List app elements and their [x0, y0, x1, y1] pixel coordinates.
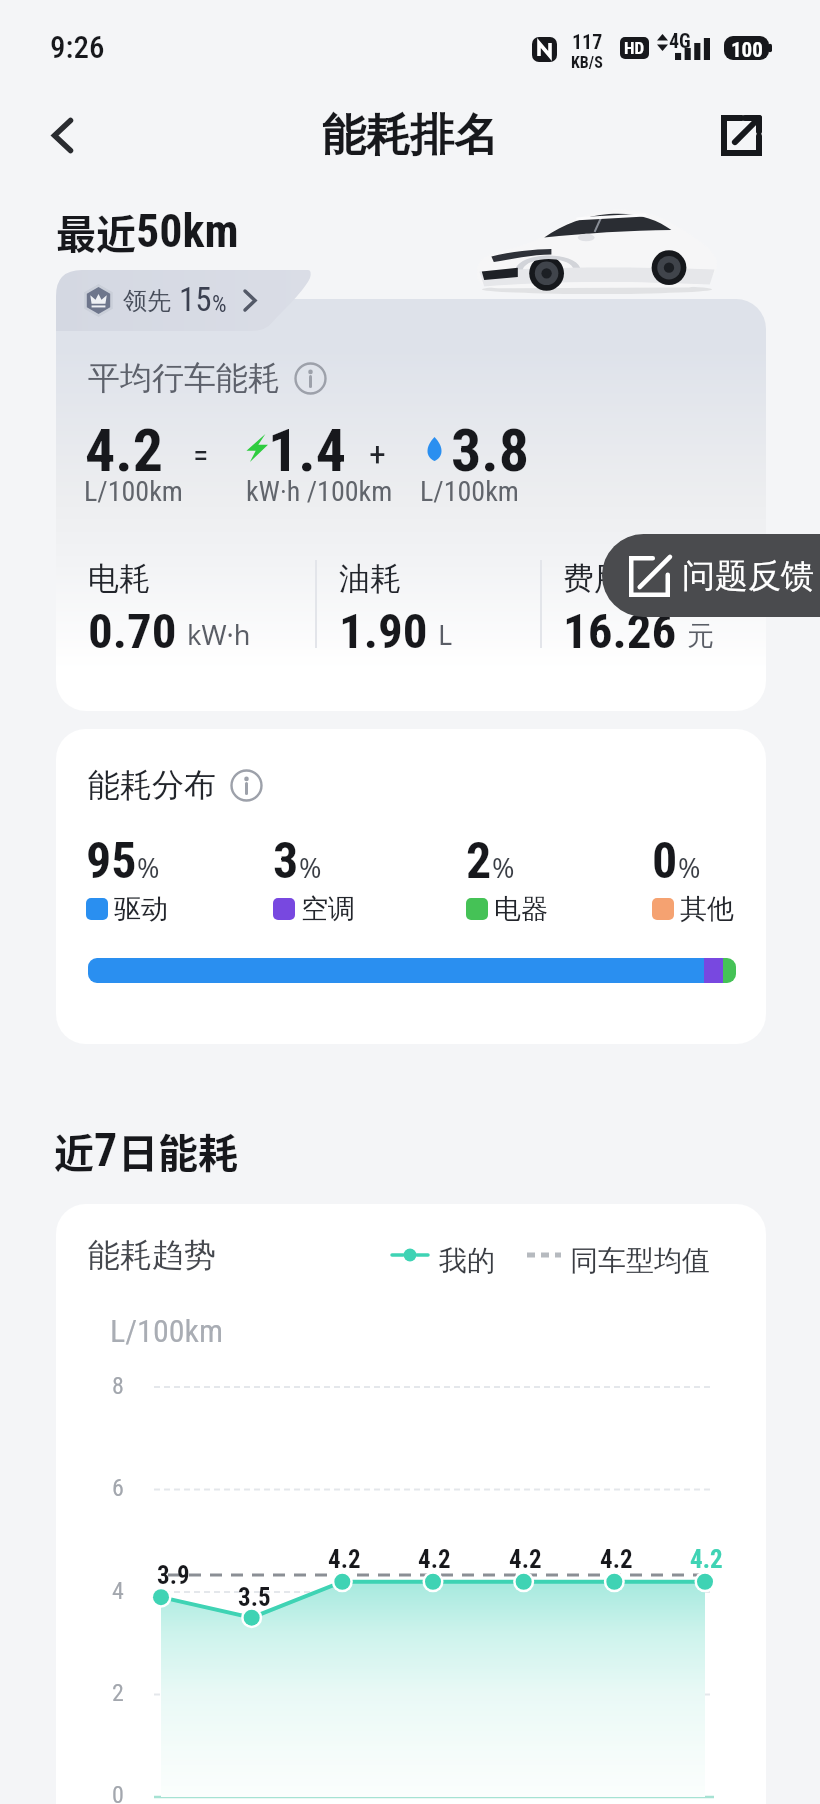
staticText: 7 [94, 1123, 118, 1177]
staticText: 驱动 [114, 892, 168, 926]
staticText: + [369, 434, 386, 474]
staticText: 能耗排名 [322, 108, 498, 163]
staticText: 其他 [680, 892, 734, 926]
staticText: 4.2 [85, 415, 164, 485]
staticText: 2 [466, 832, 492, 891]
staticText: 1.90 [339, 603, 428, 660]
staticText: 95 [86, 832, 137, 891]
staticText: L/100km [110, 1312, 223, 1350]
staticText: 平均行车能耗 [88, 358, 280, 398]
staticText: 元 [687, 619, 714, 653]
staticText: % [137, 849, 160, 886]
button[interactable]: Share [706, 100, 776, 170]
staticText: 能耗分布 [88, 765, 216, 805]
staticText: 我的 [439, 1243, 495, 1278]
staticText: 3.8 [451, 415, 530, 485]
staticText: 16.26 [563, 603, 677, 660]
staticText: 最近 [56, 203, 136, 261]
button[interactable]: 问题反馈 [602, 534, 820, 617]
staticText: 117 [572, 30, 603, 53]
staticText: L/100km [84, 475, 183, 508]
staticText: 近 [54, 1122, 94, 1180]
staticText: = [193, 436, 209, 474]
staticText: 4.2 [690, 1545, 723, 1574]
staticText: 电器 [494, 892, 548, 926]
staticText: 3 [273, 832, 299, 891]
staticText: 能耗趋势 [88, 1235, 216, 1275]
staticText: % [299, 849, 322, 886]
staticText: 9:26 [50, 29, 105, 65]
staticText: 日能耗 [118, 1122, 238, 1180]
staticText: 3.9 [157, 1561, 190, 1590]
staticText: 问题反馈 [682, 555, 814, 597]
button[interactable]: Back [18, 91, 106, 179]
staticText: 4G [669, 29, 691, 52]
staticText: 2 [112, 1679, 124, 1707]
staticText: 0.70 [88, 603, 177, 660]
staticText: KB/S [571, 53, 603, 72]
staticText: 油耗 [339, 559, 401, 598]
staticText: kW·h [187, 616, 251, 653]
button[interactable]: 领先 [56, 270, 312, 331]
staticText: 0 [652, 832, 678, 891]
staticText: % [678, 849, 701, 886]
staticText: L/100km [420, 475, 519, 508]
staticText: 0 [112, 1781, 124, 1804]
staticText: L [438, 616, 453, 653]
staticText: 3.5 [238, 1583, 271, 1612]
staticText: 6 [112, 1474, 124, 1502]
staticText: 领先 [123, 286, 171, 316]
staticText: 费用 [563, 559, 625, 598]
staticText: 15 [179, 280, 212, 319]
staticText: 4.2 [418, 1545, 451, 1574]
staticText: 4.2 [600, 1545, 633, 1574]
staticText: 1.4 [268, 415, 347, 485]
staticText: 电耗 [88, 559, 150, 598]
staticText: 4.2 [509, 1545, 542, 1574]
staticText: kW·h /100km [246, 475, 393, 508]
staticText: 4 [112, 1577, 124, 1605]
staticText: 4.2 [328, 1545, 361, 1574]
staticText: 空调 [301, 892, 355, 926]
staticText: 同车型均值 [570, 1243, 710, 1278]
staticText: 50km [136, 204, 239, 258]
staticText: % [492, 849, 515, 886]
staticText: 8 [112, 1372, 124, 1400]
staticText: HD [624, 38, 645, 58]
staticText: 100 [731, 38, 763, 63]
staticText: % [212, 291, 227, 318]
